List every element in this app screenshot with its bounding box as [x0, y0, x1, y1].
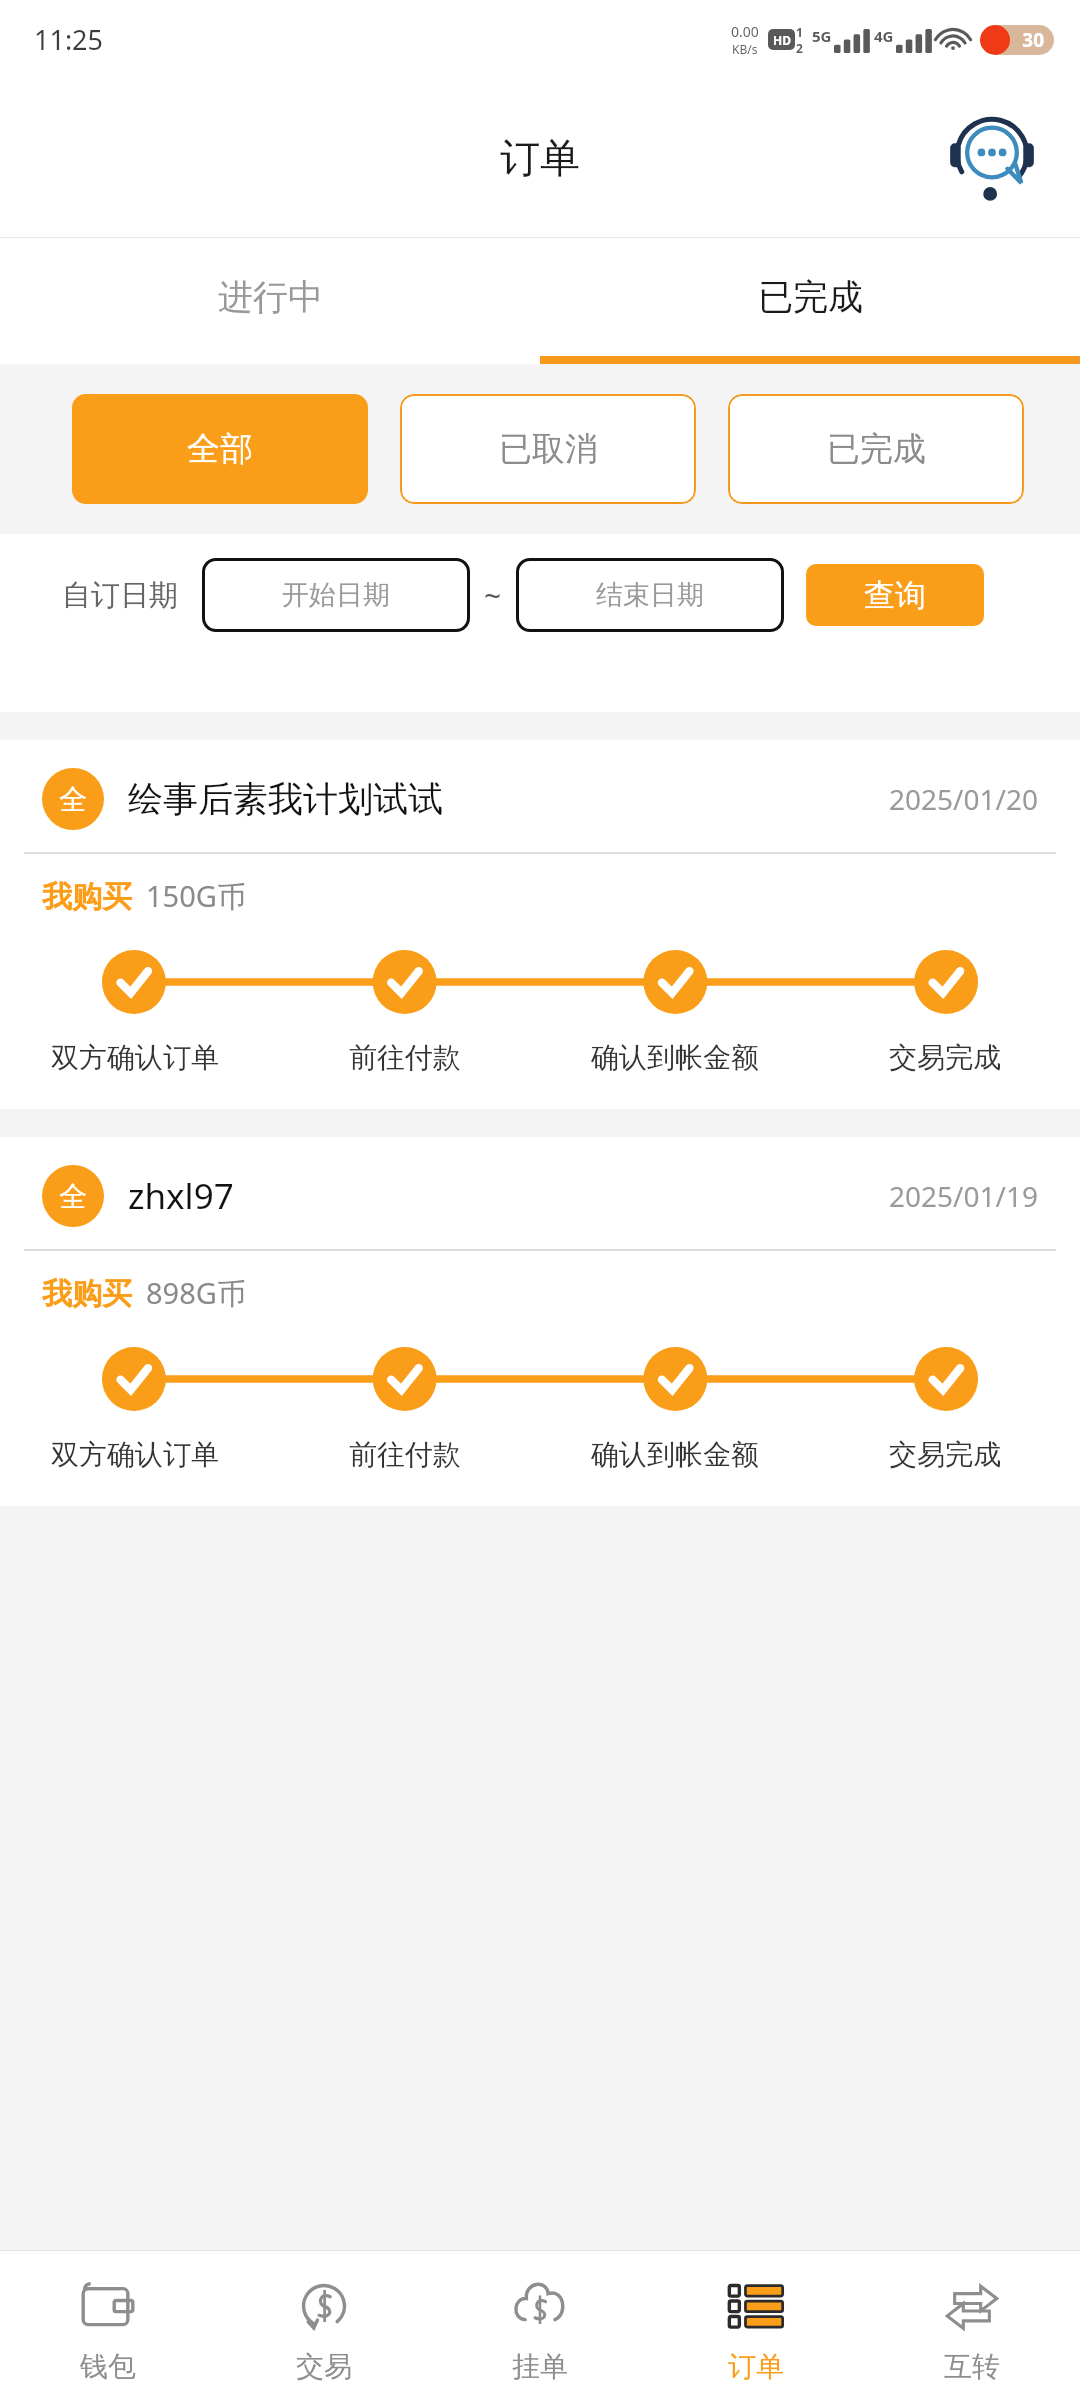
staticText: 交易完成 — [889, 1040, 1001, 1075]
staticText: 我购买 — [42, 878, 132, 916]
button[interactable]: 互转 — [864, 2251, 1080, 2408]
staticText: 交易 — [296, 2349, 352, 2384]
staticText: HD — [773, 32, 791, 48]
staticText: 双方确认订单 — [51, 1437, 219, 1472]
staticText: 2 — [796, 40, 803, 56]
staticText: 钱包 — [80, 2349, 136, 2384]
staticText: 互转 — [944, 2349, 1000, 2384]
staticText: 双方确认订单 — [51, 1040, 219, 1075]
button[interactable]: 已完成 — [540, 238, 1080, 356]
staticText: 5G — [812, 26, 832, 46]
button[interactable]: 进行中 — [0, 238, 540, 356]
staticText: 进行中 — [218, 275, 323, 319]
staticText: 1 — [796, 24, 803, 40]
staticText: 30 — [980, 27, 1044, 53]
staticText: 交易完成 — [889, 1437, 1001, 1472]
staticText: KB/s — [732, 41, 758, 57]
staticText: 全 — [59, 782, 87, 817]
button[interactable]: 全 — [0, 1137, 1080, 1506]
staticText: 2025/01/19 — [889, 1177, 1038, 1215]
button[interactable]: 全部 — [72, 394, 368, 504]
staticText: 全 — [59, 1179, 87, 1214]
button[interactable]: 交易 — [216, 2251, 432, 2408]
staticText: 0.00 — [731, 22, 759, 41]
staticText: 150G币 — [146, 876, 246, 916]
staticText: 绘事后素我计划试试 — [128, 777, 889, 821]
button[interactable]: 已完成 — [728, 394, 1024, 504]
staticText: 订单 — [500, 133, 580, 183]
button[interactable]: 钱包 — [0, 2251, 216, 2408]
button[interactable]: 结束日期 — [516, 558, 784, 632]
staticText: ~ — [484, 575, 502, 616]
button[interactable]: 查询 — [806, 564, 984, 626]
staticText: 898G币 — [146, 1273, 246, 1313]
staticText: 已完成 — [827, 428, 926, 470]
button[interactable]: Customer service — [940, 106, 1044, 210]
staticText: 前往付款 — [349, 1437, 461, 1472]
staticText: 我购买 — [42, 1275, 132, 1313]
staticText: 已取消 — [499, 428, 598, 470]
staticText: 2025/01/20 — [889, 780, 1038, 818]
staticText: 4G — [874, 26, 894, 46]
button[interactable]: 已取消 — [400, 394, 696, 504]
staticText: 订单 — [728, 2349, 784, 2384]
staticText: 确认到帐金额 — [591, 1040, 759, 1075]
button[interactable]: 订单 — [648, 2251, 864, 2408]
staticText: 自订日期 — [62, 577, 178, 614]
button[interactable]: 挂单 — [432, 2251, 648, 2408]
staticText: 11:25 — [34, 21, 104, 58]
staticText: 挂单 — [512, 2349, 568, 2384]
staticText: 结束日期 — [596, 578, 704, 612]
button[interactable]: 全 — [0, 740, 1080, 1109]
staticText: zhxl97 — [128, 1172, 889, 1220]
staticText: 已完成 — [758, 275, 863, 319]
staticText: 前往付款 — [349, 1040, 461, 1075]
staticText: 确认到帐金额 — [591, 1437, 759, 1472]
button[interactable]: 开始日期 — [202, 558, 470, 632]
staticText: 开始日期 — [282, 578, 390, 612]
staticText: 全部 — [187, 428, 253, 470]
staticText: 查询 — [864, 576, 926, 615]
